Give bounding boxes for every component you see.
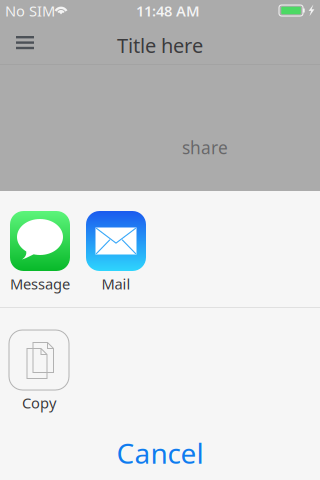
button[interactable]: Message	[10, 211, 70, 293]
staticText: Message	[10, 274, 70, 293]
button[interactable]: Menu	[8, 28, 42, 57]
staticText: Title here	[117, 32, 203, 59]
button[interactable]: Mail	[86, 211, 146, 293]
staticText: 11:48 AM	[136, 1, 200, 20]
staticText: No SIM	[5, 1, 55, 20]
staticText: Copy	[22, 393, 56, 412]
staticText: Mail	[101, 274, 130, 293]
button[interactable]: Cancel	[0, 436, 320, 470]
staticText: share	[182, 136, 228, 159]
staticText: Cancel	[116, 434, 203, 472]
button[interactable]: Copy	[9, 330, 69, 412]
